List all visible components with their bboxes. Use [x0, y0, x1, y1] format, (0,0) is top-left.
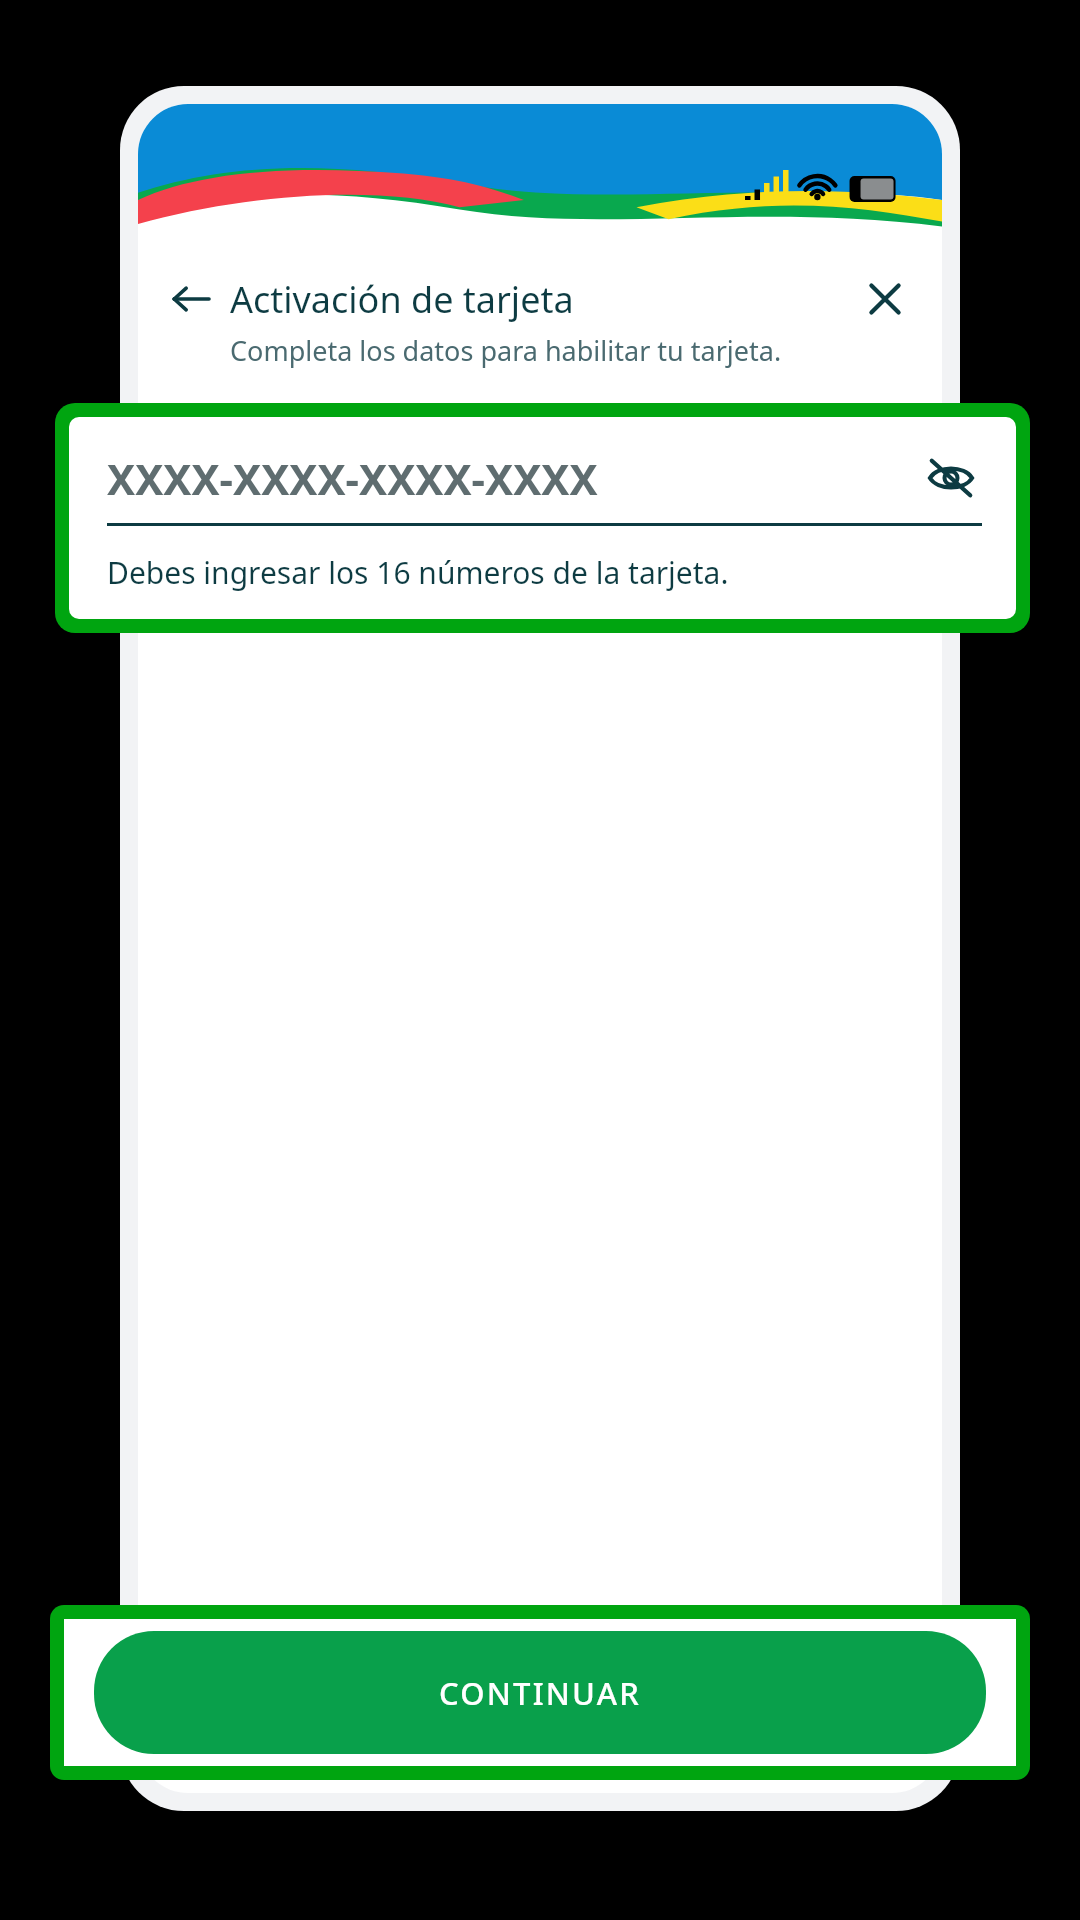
button[interactable]: Mostrar número [920, 447, 982, 509]
button[interactable]: Back [164, 272, 218, 326]
staticText: Activación de tarjeta [230, 275, 574, 324]
button[interactable]: CONTINUAR [94, 1631, 986, 1754]
staticText: Debes ingresar los 16 números de la tarj… [107, 552, 729, 593]
staticText: Completa los datos para habilitar tu tar… [230, 332, 912, 369]
staticText: XXXX-XXXX-XXXX-XXXX [107, 450, 920, 507]
button[interactable]: XXXX-XXXX-XXXX-XXXX [69, 417, 1016, 619]
staticText: CONTINUAR [439, 1672, 642, 1714]
button[interactable]: Close [858, 272, 912, 326]
